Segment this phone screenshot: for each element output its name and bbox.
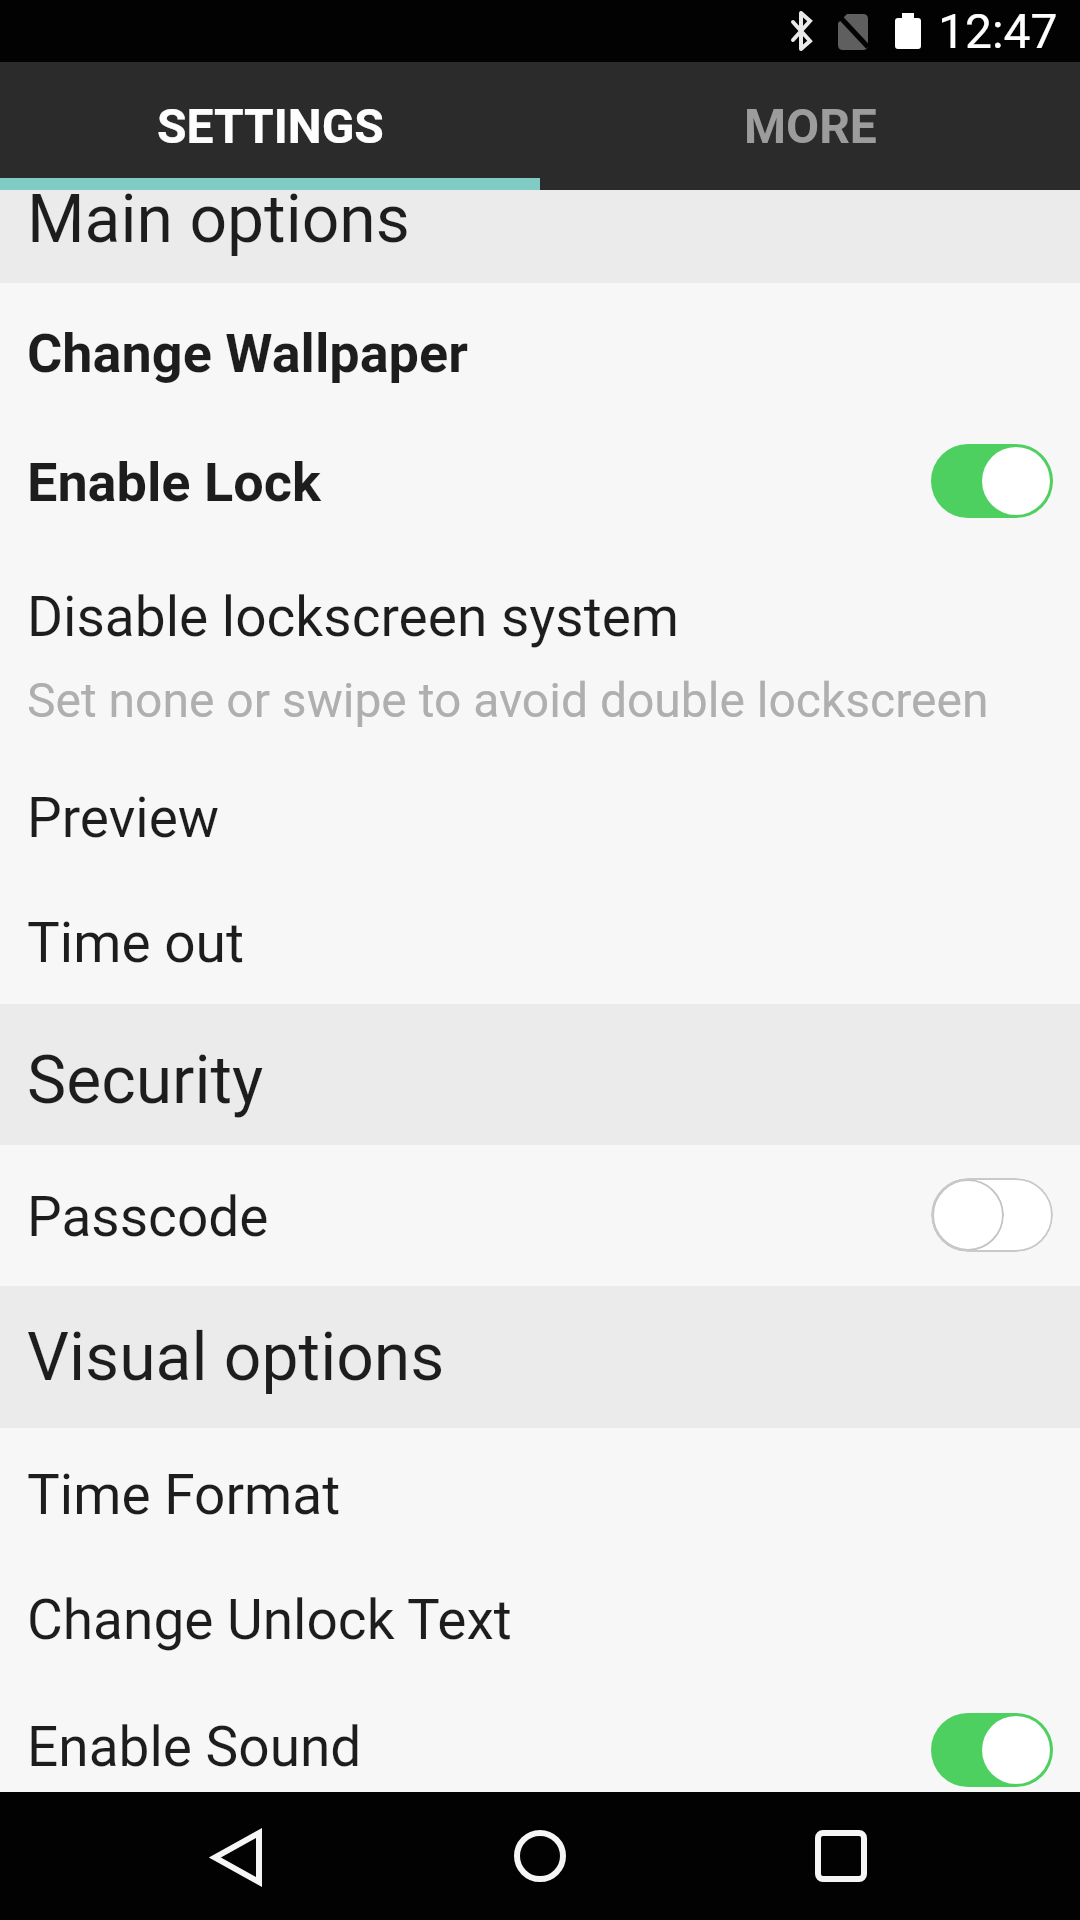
button[interactable] xyxy=(0,285,1080,425)
staticText: Change Unlock Text xyxy=(27,1588,512,1652)
staticText: MORE xyxy=(744,98,877,154)
staticText: Security xyxy=(27,1042,264,1119)
staticText: Time Format xyxy=(27,1463,341,1527)
staticText: Set none or swipe to avoid double locksc… xyxy=(27,672,989,728)
staticText: Passcode xyxy=(27,1185,269,1249)
staticText: Visual options xyxy=(27,1319,445,1396)
button[interactable] xyxy=(931,1713,1053,1787)
button[interactable] xyxy=(490,1806,590,1906)
button[interactable] xyxy=(0,1558,1080,1684)
staticText: Enable Lock xyxy=(27,451,321,514)
staticText: Enable Sound xyxy=(27,1715,362,1779)
button[interactable]: SETTINGS xyxy=(0,62,540,190)
button[interactable] xyxy=(187,1806,287,1906)
button[interactable] xyxy=(790,1806,890,1906)
button[interactable] xyxy=(0,765,1080,880)
staticText: Change Wallpaper xyxy=(27,322,468,385)
button[interactable] xyxy=(0,1428,1080,1558)
button[interactable] xyxy=(0,1684,1080,1792)
button[interactable] xyxy=(931,444,1053,518)
button[interactable] xyxy=(0,880,1080,1004)
button[interactable] xyxy=(0,425,1080,545)
staticText: Main options xyxy=(27,181,410,258)
button[interactable] xyxy=(931,1178,1053,1252)
button[interactable] xyxy=(0,1145,1080,1286)
staticText: Preview xyxy=(27,786,220,850)
button[interactable]: MORE xyxy=(540,62,1080,190)
staticText: Disable lockscreen system xyxy=(27,585,680,649)
staticText: SETTINGS xyxy=(157,98,384,154)
button[interactable] xyxy=(0,545,1080,765)
staticText: 12:47 xyxy=(938,3,1058,59)
staticText: Time out xyxy=(27,911,244,975)
